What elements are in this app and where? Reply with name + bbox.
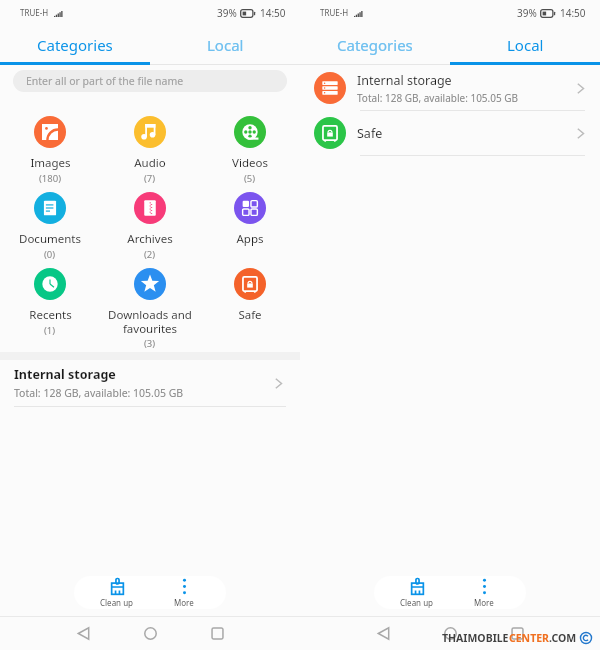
staticText: (180)	[39, 172, 62, 185]
button[interactable]: Categories	[0, 25, 150, 65]
staticText: (1)	[44, 324, 56, 337]
staticText: Clean up	[400, 597, 434, 608]
staticText: CENTER	[509, 631, 549, 645]
button[interactable]: Back	[65, 617, 101, 650]
button[interactable]: Home	[132, 617, 168, 650]
staticText: Apps	[236, 231, 264, 247]
staticText: (7)	[144, 172, 156, 185]
button[interactable]: More	[455, 576, 513, 609]
button[interactable]: Clean up	[88, 576, 146, 609]
staticText: 39%	[217, 6, 237, 20]
button[interactable]: Home	[432, 617, 468, 650]
button[interactable]: Recents	[199, 617, 235, 650]
staticText: THAIMOBILE	[442, 631, 509, 645]
button[interactable]: Local	[150, 25, 300, 65]
staticText: Images	[30, 155, 71, 171]
staticText: Total: 128 GB, available: 105.05 GB	[14, 386, 184, 400]
button[interactable]: Audio	[100, 116, 200, 192]
staticText: More	[174, 597, 194, 608]
staticText: Local	[207, 35, 244, 55]
staticText: Categories	[337, 35, 413, 55]
staticText: Audio	[134, 155, 166, 171]
button[interactable]: Images	[0, 116, 100, 192]
staticText: TRUE-H	[320, 7, 349, 18]
staticText: Downloads and favourites	[108, 307, 192, 336]
staticText: (5)	[244, 172, 256, 185]
staticText: 14:50	[560, 6, 586, 20]
staticText: Enter all or part of the file name	[26, 74, 184, 88]
button[interactable]: Downloads and favourites	[100, 268, 200, 344]
button[interactable]: More	[155, 576, 213, 609]
staticText: .COM	[549, 631, 577, 645]
button[interactable]: Safe	[200, 268, 300, 344]
staticText: Total: 128 GB, available: 105.05 GB	[357, 91, 519, 105]
button[interactable]: Safe	[300, 111, 600, 156]
staticText: Local	[507, 35, 544, 55]
staticText: (0)	[44, 248, 56, 261]
button[interactable]: Videos	[200, 116, 300, 192]
staticText: 39%	[517, 6, 537, 20]
staticText: Clean up	[100, 597, 134, 608]
button[interactable]: Internal storage	[0, 360, 300, 407]
staticText: (3)	[144, 337, 156, 350]
staticText: Internal storage	[357, 72, 452, 89]
button[interactable]: Local	[450, 25, 600, 65]
staticText: 14:50	[260, 6, 286, 20]
staticText: TRUE-H	[20, 7, 49, 18]
staticText: Recents	[29, 307, 72, 323]
staticText: (2)	[144, 248, 156, 261]
button[interactable]: Apps	[200, 192, 300, 268]
staticText: More	[474, 597, 494, 608]
button[interactable]: Clean up	[388, 576, 446, 609]
staticText: Categories	[37, 35, 113, 55]
staticText: Documents	[19, 231, 81, 247]
button[interactable]: Documents	[0, 192, 100, 268]
button[interactable]: Internal storage	[300, 66, 600, 111]
staticText: Safe	[238, 307, 262, 323]
staticText: Videos	[232, 155, 268, 171]
button[interactable]: Back	[365, 617, 401, 650]
button[interactable]: Recents	[0, 268, 100, 344]
staticText: Archives	[127, 231, 173, 247]
staticText: Safe	[357, 125, 383, 142]
staticText: Internal storage	[14, 366, 116, 383]
button[interactable]: Recents	[499, 617, 535, 650]
button[interactable]: Categories	[300, 25, 450, 65]
button[interactable]: Enter all or part of the file name	[13, 70, 287, 92]
button[interactable]: Archives	[100, 192, 200, 268]
